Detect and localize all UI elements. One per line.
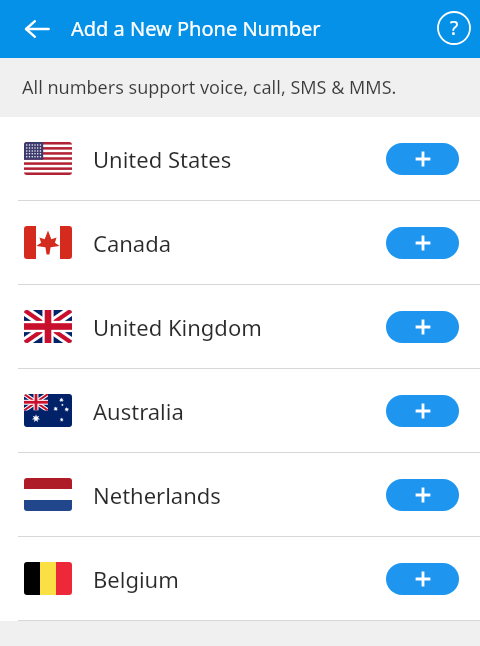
staticText: Australia: [93, 396, 386, 426]
button[interactable]: Help: [428, 2, 480, 54]
button[interactable]: Belgium: [0, 537, 480, 620]
staticText: Canada: [93, 228, 386, 258]
staticText: ?: [450, 15, 459, 41]
button[interactable]: Back: [10, 2, 64, 56]
button[interactable]: United Kingdom: [0, 285, 480, 368]
staticText: Add a New Phone Number: [71, 15, 321, 42]
button[interactable]: Netherlands: [0, 453, 480, 536]
button[interactable]: Add Australia: [386, 395, 459, 427]
staticText: All numbers support voice, call, SMS & M…: [22, 75, 397, 100]
staticText: United States: [93, 144, 386, 174]
button[interactable]: Australia: [0, 369, 480, 452]
staticText: Belgium: [93, 564, 386, 594]
button[interactable]: Add United States: [386, 143, 459, 175]
staticText: United Kingdom: [93, 312, 386, 342]
button[interactable]: United States: [0, 117, 480, 200]
button[interactable]: Add Canada: [386, 227, 459, 259]
button[interactable]: Add Belgium: [386, 563, 459, 595]
button[interactable]: Canada: [0, 201, 480, 284]
button[interactable]: Add United Kingdom: [386, 311, 459, 343]
staticText: Netherlands: [93, 480, 386, 510]
button[interactable]: Add Netherlands: [386, 479, 459, 511]
